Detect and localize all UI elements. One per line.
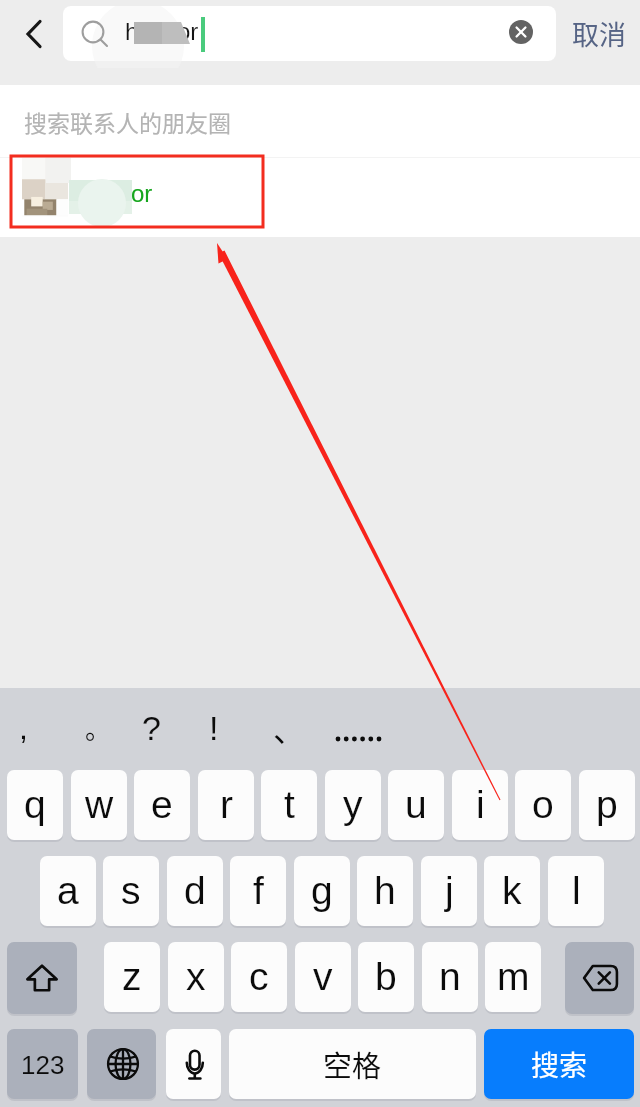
button[interactable]: Numbers: [7, 1029, 78, 1099]
staticText: s: [121, 869, 141, 913]
staticText: w: [85, 783, 114, 827]
button[interactable]: 。: [64, 700, 132, 756]
staticText: m: [497, 955, 530, 999]
staticText: 搜索联系人的朋友圈: [24, 105, 231, 138]
staticText: h: [374, 869, 396, 913]
staticText: h: [76, 180, 90, 207]
button[interactable]: ?: [117, 700, 185, 756]
button[interactable]: q: [7, 770, 63, 840]
staticText: g: [311, 869, 333, 913]
button[interactable]: n: [422, 942, 478, 1012]
button[interactable]: 取消: [566, 6, 636, 61]
staticText: k: [502, 869, 522, 913]
staticText: q: [24, 783, 46, 827]
staticText: o: [532, 783, 554, 827]
button[interactable]: Switch language: [87, 1029, 156, 1099]
button[interactable]: p: [579, 770, 635, 840]
button[interactable]: Shift: [7, 942, 77, 1014]
staticText: i: [476, 783, 485, 827]
staticText: 。: [85, 709, 112, 747]
button[interactable]: f: [230, 856, 286, 926]
button[interactable]: !: [180, 700, 248, 756]
button[interactable]: Voice input: [166, 1029, 221, 1099]
button[interactable]: h: [63, 6, 556, 61]
staticText: b: [375, 955, 397, 999]
staticText: p: [596, 783, 618, 827]
button[interactable]: i: [452, 770, 508, 840]
button[interactable]: b: [358, 942, 414, 1012]
button[interactable]: 搜索: [484, 1029, 634, 1099]
staticText: or: [131, 180, 153, 207]
staticText: !: [209, 709, 219, 747]
button[interactable]: k: [484, 856, 540, 926]
button[interactable]: j: [421, 856, 477, 926]
staticText: 空格: [323, 1043, 382, 1085]
button[interactable]: v: [295, 942, 351, 1012]
staticText: v: [313, 955, 333, 999]
button[interactable]: a: [40, 856, 96, 926]
staticText: a: [57, 869, 79, 913]
staticText: y: [343, 783, 363, 827]
staticText: ?: [142, 709, 161, 747]
staticText: l: [572, 869, 581, 913]
button[interactable]: Backspace: [565, 942, 634, 1014]
button[interactable]: z: [104, 942, 160, 1012]
staticText: 、: [273, 705, 306, 751]
button[interactable]: h: [0, 157, 640, 237]
staticText: r: [220, 783, 233, 827]
staticText: h: [125, 18, 139, 45]
button[interactable]: ,: [0, 700, 57, 756]
staticText: e: [151, 783, 173, 827]
button[interactable]: g: [294, 856, 350, 926]
button[interactable]: w: [71, 770, 127, 840]
button[interactable]: h: [357, 856, 413, 926]
button[interactable]: Clear text: [509, 20, 533, 44]
staticText: ,: [19, 710, 28, 746]
staticText: 取消: [572, 14, 626, 53]
button[interactable]: e: [134, 770, 190, 840]
staticText: c: [249, 955, 269, 999]
staticText: f: [253, 869, 264, 913]
button[interactable]: t: [261, 770, 317, 840]
staticText: 搜索: [531, 1044, 588, 1085]
button[interactable]: m: [485, 942, 541, 1012]
button[interactable]: x: [168, 942, 224, 1012]
button[interactable]: c: [231, 942, 287, 1012]
button[interactable]: 、: [255, 700, 323, 756]
button[interactable]: Back: [10, 8, 62, 60]
staticText: z: [122, 955, 142, 999]
staticText: t: [284, 783, 295, 827]
button[interactable]: d: [167, 856, 223, 926]
button[interactable]: u: [388, 770, 444, 840]
button[interactable]: s: [103, 856, 159, 926]
button[interactable]: Ellipsis: [322, 700, 390, 756]
button[interactable]: y: [325, 770, 381, 840]
staticText: 123: [21, 1050, 65, 1079]
button[interactable]: r: [198, 770, 254, 840]
button[interactable]: o: [515, 770, 571, 840]
staticText: n: [439, 955, 461, 999]
staticText: or: [177, 18, 199, 45]
button[interactable]: l: [548, 856, 604, 926]
staticText: u: [405, 783, 427, 827]
staticText: x: [186, 955, 206, 999]
button[interactable]: 空格: [229, 1029, 476, 1099]
staticText: d: [184, 869, 206, 913]
staticText: j: [445, 869, 454, 913]
